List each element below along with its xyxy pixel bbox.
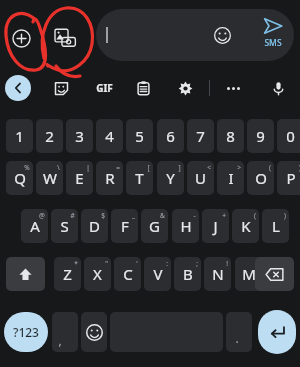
staticText: GIF (96, 81, 113, 95)
button[interactable]: T (126, 161, 153, 195)
button[interactable]: K (232, 209, 259, 243)
staticText: G (149, 216, 160, 236)
staticText: = (116, 163, 120, 172)
staticText: X (93, 264, 102, 284)
staticText: S (60, 216, 69, 236)
staticText: O (255, 168, 267, 188)
button[interactable]: Comma (52, 312, 78, 352)
staticText: W (43, 168, 57, 188)
button[interactable]: Period (226, 312, 252, 352)
button[interactable]: 6 (157, 119, 184, 153)
button[interactable]: D (81, 209, 108, 243)
button[interactable]: R (96, 161, 123, 195)
button[interactable]: 5 (126, 119, 153, 153)
button[interactable]: O (247, 161, 274, 195)
button[interactable]: Settings (172, 75, 198, 101)
button[interactable]: I (217, 161, 244, 195)
staticText: [ (147, 163, 150, 172)
button[interactable]: GIF (89, 75, 119, 101)
staticText: U (195, 168, 206, 188)
button[interactable]: A (21, 209, 48, 243)
staticText: * (74, 259, 78, 268)
button[interactable]: H (172, 209, 199, 243)
button[interactable]: Emoji (96, 9, 294, 61)
button[interactable]: 9 (247, 119, 274, 153)
staticText: ?123 (13, 324, 39, 340)
button[interactable]: Shift (6, 257, 45, 291)
staticText: ! (226, 259, 228, 268)
button[interactable]: V (144, 257, 171, 291)
staticText: ) (284, 211, 286, 220)
staticText: C (123, 264, 133, 284)
button[interactable]: J (202, 209, 229, 243)
button[interactable]: Stickers (48, 75, 74, 101)
button[interactable]: X (84, 257, 111, 291)
staticText: H (180, 216, 192, 236)
button[interactable]: Camera (48, 21, 82, 55)
button[interactable]: P (277, 161, 300, 195)
staticText: < (207, 163, 211, 172)
button[interactable]: F (111, 209, 138, 243)
staticText: 9 (256, 126, 265, 146)
staticText: - (193, 211, 196, 220)
button[interactable]: U (187, 161, 214, 195)
button[interactable]: Emoji (212, 25, 232, 45)
staticText: > (237, 163, 241, 172)
staticText: J (213, 216, 218, 236)
staticText: F (121, 216, 129, 236)
button[interactable]: G (141, 209, 168, 243)
staticText: ] (178, 163, 181, 172)
button[interactable]: ?123 (4, 312, 48, 352)
button[interactable]: B (174, 257, 201, 291)
staticText: I (228, 168, 234, 188)
button[interactable]: W (36, 161, 63, 195)
staticText: 6 (166, 126, 175, 146)
staticText: B (183, 264, 193, 284)
button[interactable]: M (235, 257, 262, 291)
button[interactable]: Enter (258, 310, 296, 354)
button[interactable]: Y (157, 161, 184, 195)
button[interactable]: Backspace (255, 257, 294, 291)
staticText: & (160, 211, 165, 220)
button[interactable]: 0 (277, 119, 300, 153)
staticText: M (242, 264, 256, 284)
staticText: + (222, 211, 226, 220)
button[interactable]: N (204, 257, 231, 291)
button[interactable]: Back (5, 75, 31, 101)
staticText: Z (63, 264, 72, 284)
button[interactable]: E (66, 161, 93, 195)
staticText: 0 (286, 126, 295, 146)
button[interactable]: 3 (66, 119, 93, 153)
button[interactable]: 1 (6, 119, 33, 153)
button[interactable]: 7 (187, 119, 214, 153)
button[interactable]: Send SMS (254, 16, 292, 54)
staticText: % (24, 163, 30, 172)
staticText: $ (101, 211, 105, 220)
button[interactable]: Emoji keyboard (81, 312, 107, 352)
staticText: _ (132, 211, 135, 220)
button[interactable]: Voice input (265, 75, 291, 101)
button[interactable]: Clipboard (130, 75, 156, 101)
staticText: R (105, 168, 115, 188)
button[interactable]: 8 (217, 119, 244, 153)
staticText: Y (166, 168, 175, 188)
button[interactable]: C (114, 257, 141, 291)
staticText: 5 (135, 126, 144, 146)
button[interactable]: 4 (96, 119, 123, 153)
staticText: T (135, 168, 144, 188)
button[interactable]: L (262, 209, 289, 243)
staticText: 2 (45, 126, 54, 146)
button[interactable]: Q (6, 161, 33, 195)
staticText: 3 (75, 126, 84, 146)
staticText: L (272, 216, 280, 236)
staticText: , (58, 332, 62, 348)
staticText: 7 (196, 126, 205, 146)
staticText: E (75, 168, 84, 188)
button[interactable]: More options (220, 75, 246, 101)
button[interactable]: 2 (36, 119, 63, 153)
button[interactable]: Z (54, 257, 81, 291)
button[interactable]: S (51, 209, 78, 243)
button[interactable]: Add attachment (4, 21, 38, 55)
